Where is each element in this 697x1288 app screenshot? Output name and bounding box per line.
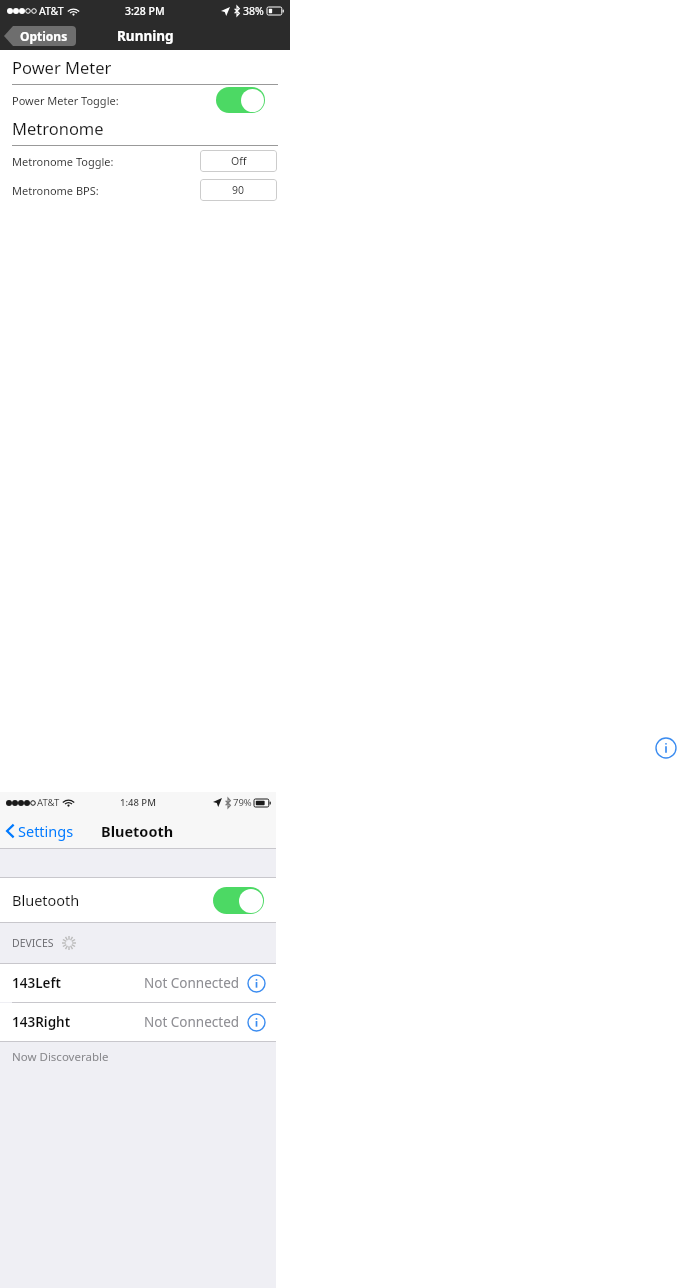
staticText: 1:48 PM <box>120 796 156 809</box>
staticText: Metronome <box>12 117 104 139</box>
button[interactable]: 143Left <box>0 964 276 1002</box>
button[interactable]: 143Right <box>0 1003 276 1041</box>
staticText: Now Discoverable <box>12 1049 109 1065</box>
staticText: 143Left <box>12 974 61 992</box>
staticText: Power Meter Toggle: <box>12 93 119 108</box>
button[interactable]: More info about 143Left <box>247 974 266 993</box>
button[interactable]: Power Meter Toggle <box>216 87 265 113</box>
staticText: AT&T <box>39 4 64 18</box>
staticText: AT&T <box>37 796 60 809</box>
staticText: 38% <box>243 4 264 18</box>
button[interactable]: More info about 143Right <box>247 1013 266 1032</box>
staticText: Metronome BPS: <box>12 183 99 198</box>
staticText: Power Meter <box>12 56 112 78</box>
staticText: Metronome Toggle: <box>12 154 114 169</box>
staticText: DEVICES <box>12 936 54 950</box>
staticText: Not Connected <box>144 974 240 992</box>
staticText: Not Connected <box>144 1013 240 1031</box>
button[interactable]: Options <box>4 26 76 46</box>
staticText: 143Right <box>12 1013 71 1031</box>
staticText: 90 <box>232 183 245 197</box>
staticText: Off <box>231 154 247 168</box>
staticText: Options <box>20 28 68 44</box>
button[interactable]: Off <box>200 150 277 172</box>
staticText: Bluetooth <box>12 890 80 910</box>
staticText: 3:28 PM <box>125 4 165 18</box>
button[interactable]: Bluetooth <box>0 878 276 922</box>
staticText: Bluetooth <box>101 821 174 841</box>
staticText: Settings <box>18 821 74 841</box>
other: Bluetooth <box>213 887 264 914</box>
staticText: Running <box>117 27 174 45</box>
staticText: 79% <box>233 796 252 809</box>
button[interactable]: 90 <box>200 179 277 201</box>
button[interactable]: Settings <box>6 821 74 841</box>
